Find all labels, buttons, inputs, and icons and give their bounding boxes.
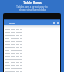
button[interactable]: [4, 70, 60, 72]
button[interactable]: [4, 67, 60, 70]
button[interactable]: [4, 28, 60, 31]
button[interactable]: Search: [52, 21, 55, 24]
staticText: Table Rows: [23, 0, 42, 5]
button[interactable]: [4, 52, 60, 55]
button[interactable]: [4, 64, 60, 67]
button[interactable]: [4, 37, 60, 40]
staticText: Tables are a great way to: [16, 5, 48, 9]
button[interactable]: [4, 34, 60, 37]
button[interactable]: [4, 46, 60, 49]
staticText: Rows: [9, 21, 15, 24]
button[interactable]: [4, 49, 60, 52]
button[interactable]: More options: [56, 21, 59, 24]
button[interactable]: [4, 40, 60, 43]
button[interactable]: [4, 58, 60, 61]
button[interactable]: [4, 43, 60, 46]
button[interactable]: [4, 31, 60, 34]
staticText: show structured data: [19, 8, 46, 12]
button[interactable]: [4, 55, 60, 58]
button[interactable]: [4, 61, 60, 64]
